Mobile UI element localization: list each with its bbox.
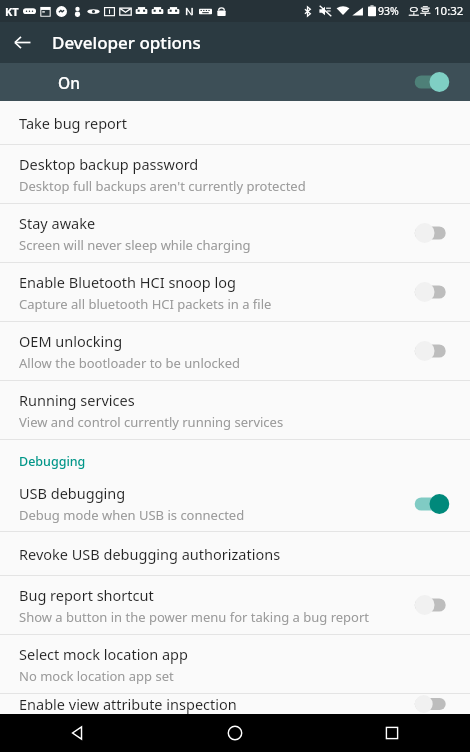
staticText: No mock location app set [19, 667, 174, 685]
button[interactable]: USB debugging [0, 476, 470, 531]
staticText: Desktop backup password [19, 154, 199, 174]
staticText: On [58, 72, 80, 93]
button[interactable]: Bug report shortcut [0, 576, 470, 634]
staticText: Screen will never sleep while charging [19, 236, 251, 254]
button[interactable]: Back [0, 22, 44, 63]
staticText: OEM unlocking [19, 331, 123, 351]
button[interactable]: Take bug report [0, 101, 470, 144]
button[interactable]: OEM unlocking [0, 322, 470, 380]
button[interactable]: Select mock location app [0, 635, 470, 693]
button[interactable]: Revoke USB debugging authorizations [0, 532, 470, 575]
staticText: Take bug report [19, 113, 128, 133]
button[interactable]: Home [207, 714, 263, 752]
staticText: KT [5, 4, 19, 19]
staticText: Debugging [19, 453, 86, 470]
staticText: Allow the bootloader to be unlocked [19, 354, 241, 372]
staticText: USB debugging [19, 483, 126, 503]
button[interactable]: Recent apps [364, 714, 420, 752]
staticText: View and control currently running servi… [19, 413, 284, 431]
button[interactable]: Enable view attribute inspection [0, 694, 470, 714]
staticText: 오후 10:32 [408, 3, 464, 19]
button[interactable]: Running services [0, 381, 470, 439]
staticText: Select mock location app [19, 644, 188, 664]
staticText: Stay awake [19, 213, 96, 233]
staticText: Bug report shortcut [19, 585, 154, 605]
staticText: Revoke USB debugging authorizations [19, 544, 281, 564]
staticText: 93% [378, 4, 399, 18]
button[interactable]: On [0, 63, 470, 101]
staticText: Developer options [52, 31, 201, 54]
button[interactable]: Desktop backup password [0, 145, 470, 203]
staticText: Show a button in the power menu for taki… [19, 608, 369, 626]
staticText: Running services [19, 390, 135, 410]
staticText: Debug mode when USB is connected [19, 506, 245, 524]
button[interactable]: Stay awake [0, 204, 470, 262]
staticText: Enable view attribute inspection [19, 694, 237, 714]
staticText: Capture all bluetooth HCI packets in a f… [19, 295, 272, 313]
staticText: Enable Bluetooth HCI snoop log [19, 272, 236, 292]
button[interactable]: Enable Bluetooth HCI snoop log [0, 263, 470, 321]
button[interactable]: Back [50, 714, 106, 752]
staticText: Desktop full backups aren't currently pr… [19, 177, 306, 195]
